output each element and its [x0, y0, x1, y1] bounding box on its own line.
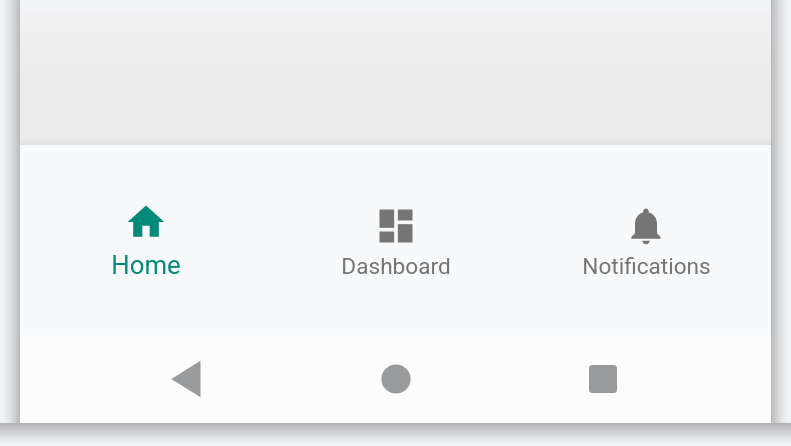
button[interactable]: Recent apps — [568, 335, 638, 423]
button[interactable]: Notifications — [521, 145, 771, 335]
staticText: Dashboard — [341, 253, 451, 279]
button[interactable]: Back — [152, 335, 222, 423]
button[interactable]: Home — [361, 335, 431, 423]
staticText: Home — [111, 250, 181, 280]
button[interactable]: Dashboard — [271, 145, 521, 335]
button[interactable]: Home — [20, 145, 271, 335]
staticText: Notifications — [582, 253, 711, 279]
